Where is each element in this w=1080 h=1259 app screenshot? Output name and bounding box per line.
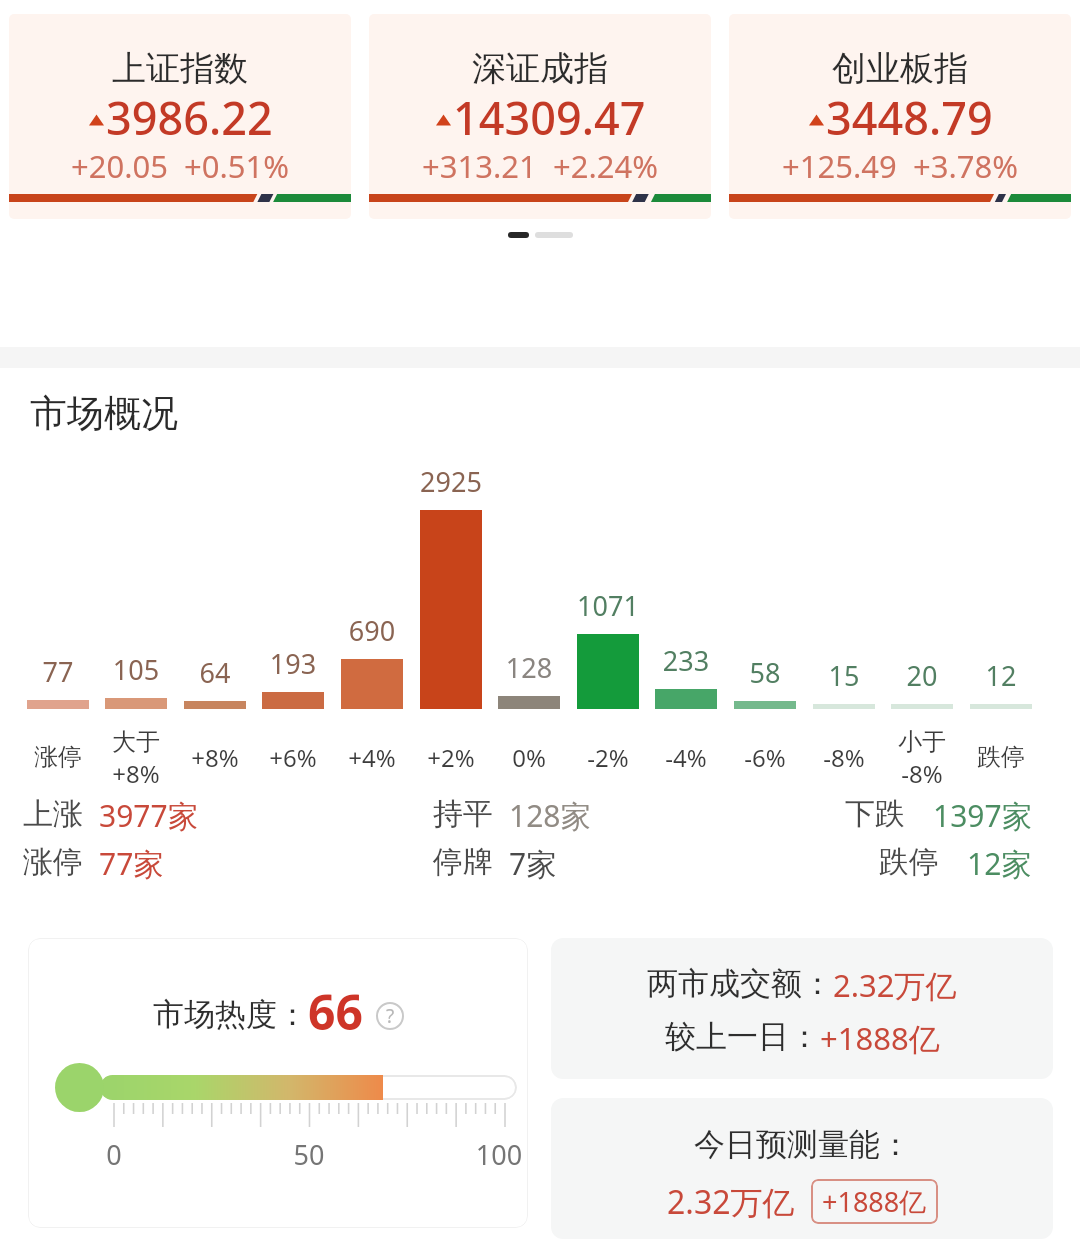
- staticText: 1071: [564, 587, 652, 624]
- staticText: 128家: [509, 795, 591, 836]
- staticText: +2%: [407, 741, 495, 774]
- staticText: 市场热度：: [153, 995, 308, 1034]
- staticText: 14309.47: [453, 87, 646, 148]
- staticText: 停牌: [433, 843, 493, 881]
- staticText: -6%: [721, 741, 809, 774]
- staticText: 77家: [99, 843, 164, 884]
- staticText: 690: [328, 612, 416, 649]
- staticText: +6%: [249, 741, 337, 774]
- staticText: 193: [249, 645, 337, 682]
- staticText: 下跌: [845, 795, 905, 833]
- staticText: 持平: [433, 795, 493, 833]
- staticText: 58: [721, 654, 809, 691]
- staticText: 7家: [509, 843, 557, 884]
- button[interactable]: 两市成交额：: [551, 938, 1053, 1079]
- staticText: 涨停: [23, 843, 83, 881]
- staticText: +2.24%: [553, 145, 658, 187]
- button[interactable]: 上证指数: [9, 14, 351, 219]
- staticText: 12家: [967, 843, 1032, 884]
- other: 市场热度说明: [376, 1002, 404, 1030]
- staticText: 较上一日：: [665, 1017, 820, 1056]
- button[interactable]: 第一页: [508, 232, 529, 238]
- staticText: 3986.22: [106, 87, 273, 148]
- staticText: 66: [308, 979, 363, 1044]
- staticText: 跌停: [879, 843, 939, 881]
- staticText: -2%: [564, 741, 652, 774]
- staticText: 233: [642, 642, 730, 679]
- staticText: 128: [485, 649, 573, 686]
- staticText: 2925: [407, 463, 495, 500]
- staticText: -8%: [800, 741, 888, 774]
- staticText: 64: [171, 654, 259, 691]
- staticText: 涨停: [14, 742, 102, 772]
- staticText: 2.32万亿: [667, 1180, 795, 1224]
- staticText: 50: [286, 1136, 332, 1173]
- staticText: 小于: [878, 727, 966, 757]
- staticText: 77: [14, 653, 102, 690]
- staticText: +1888亿: [822, 1183, 927, 1220]
- staticText: 0: [102, 1136, 126, 1173]
- staticText: +3.78%: [913, 145, 1018, 187]
- staticText: 今日预测量能：: [694, 1125, 911, 1164]
- staticText: 上涨: [23, 795, 83, 833]
- staticText: +1888亿: [820, 1017, 940, 1059]
- staticText: 市场概况: [30, 390, 178, 437]
- staticText: 3977家: [99, 795, 198, 836]
- staticText: +125.49: [782, 145, 897, 187]
- staticText: 12: [957, 657, 1045, 694]
- staticText: -4%: [642, 741, 730, 774]
- staticText: +313.21: [422, 145, 537, 187]
- staticText: +20.05: [71, 145, 168, 187]
- staticText: ?: [386, 1003, 395, 1029]
- staticText: 20: [878, 657, 966, 694]
- staticText: +0.51%: [184, 145, 289, 187]
- button[interactable]: 市场热度：: [28, 938, 528, 1228]
- staticText: 100: [466, 1136, 528, 1173]
- staticText: 上证指数: [112, 47, 248, 90]
- button[interactable]: +1888亿: [822, 1183, 927, 1220]
- staticText: +4%: [328, 741, 416, 774]
- staticText: 1397家: [933, 795, 1032, 836]
- staticText: 15: [800, 657, 888, 694]
- staticText: 两市成交额：: [647, 964, 833, 1003]
- staticText: 0%: [485, 741, 573, 774]
- staticText: +8%: [171, 741, 259, 774]
- staticText: 跌停: [957, 742, 1045, 772]
- staticText: 深证成指: [472, 47, 608, 90]
- staticText: 大于: [92, 727, 180, 757]
- staticText: 创业板指: [832, 47, 968, 90]
- staticText: -8%: [878, 757, 966, 787]
- button[interactable]: 深证成指: [369, 14, 711, 219]
- staticText: +8%: [92, 757, 180, 787]
- button[interactable]: 今日预测量能：: [551, 1098, 1053, 1239]
- staticText: 3448.79: [826, 87, 993, 148]
- staticText: 105: [92, 651, 180, 688]
- button[interactable]: 第二页: [535, 232, 573, 238]
- staticText: 2.32万亿: [833, 964, 957, 1006]
- button[interactable]: 创业板指: [729, 14, 1071, 219]
